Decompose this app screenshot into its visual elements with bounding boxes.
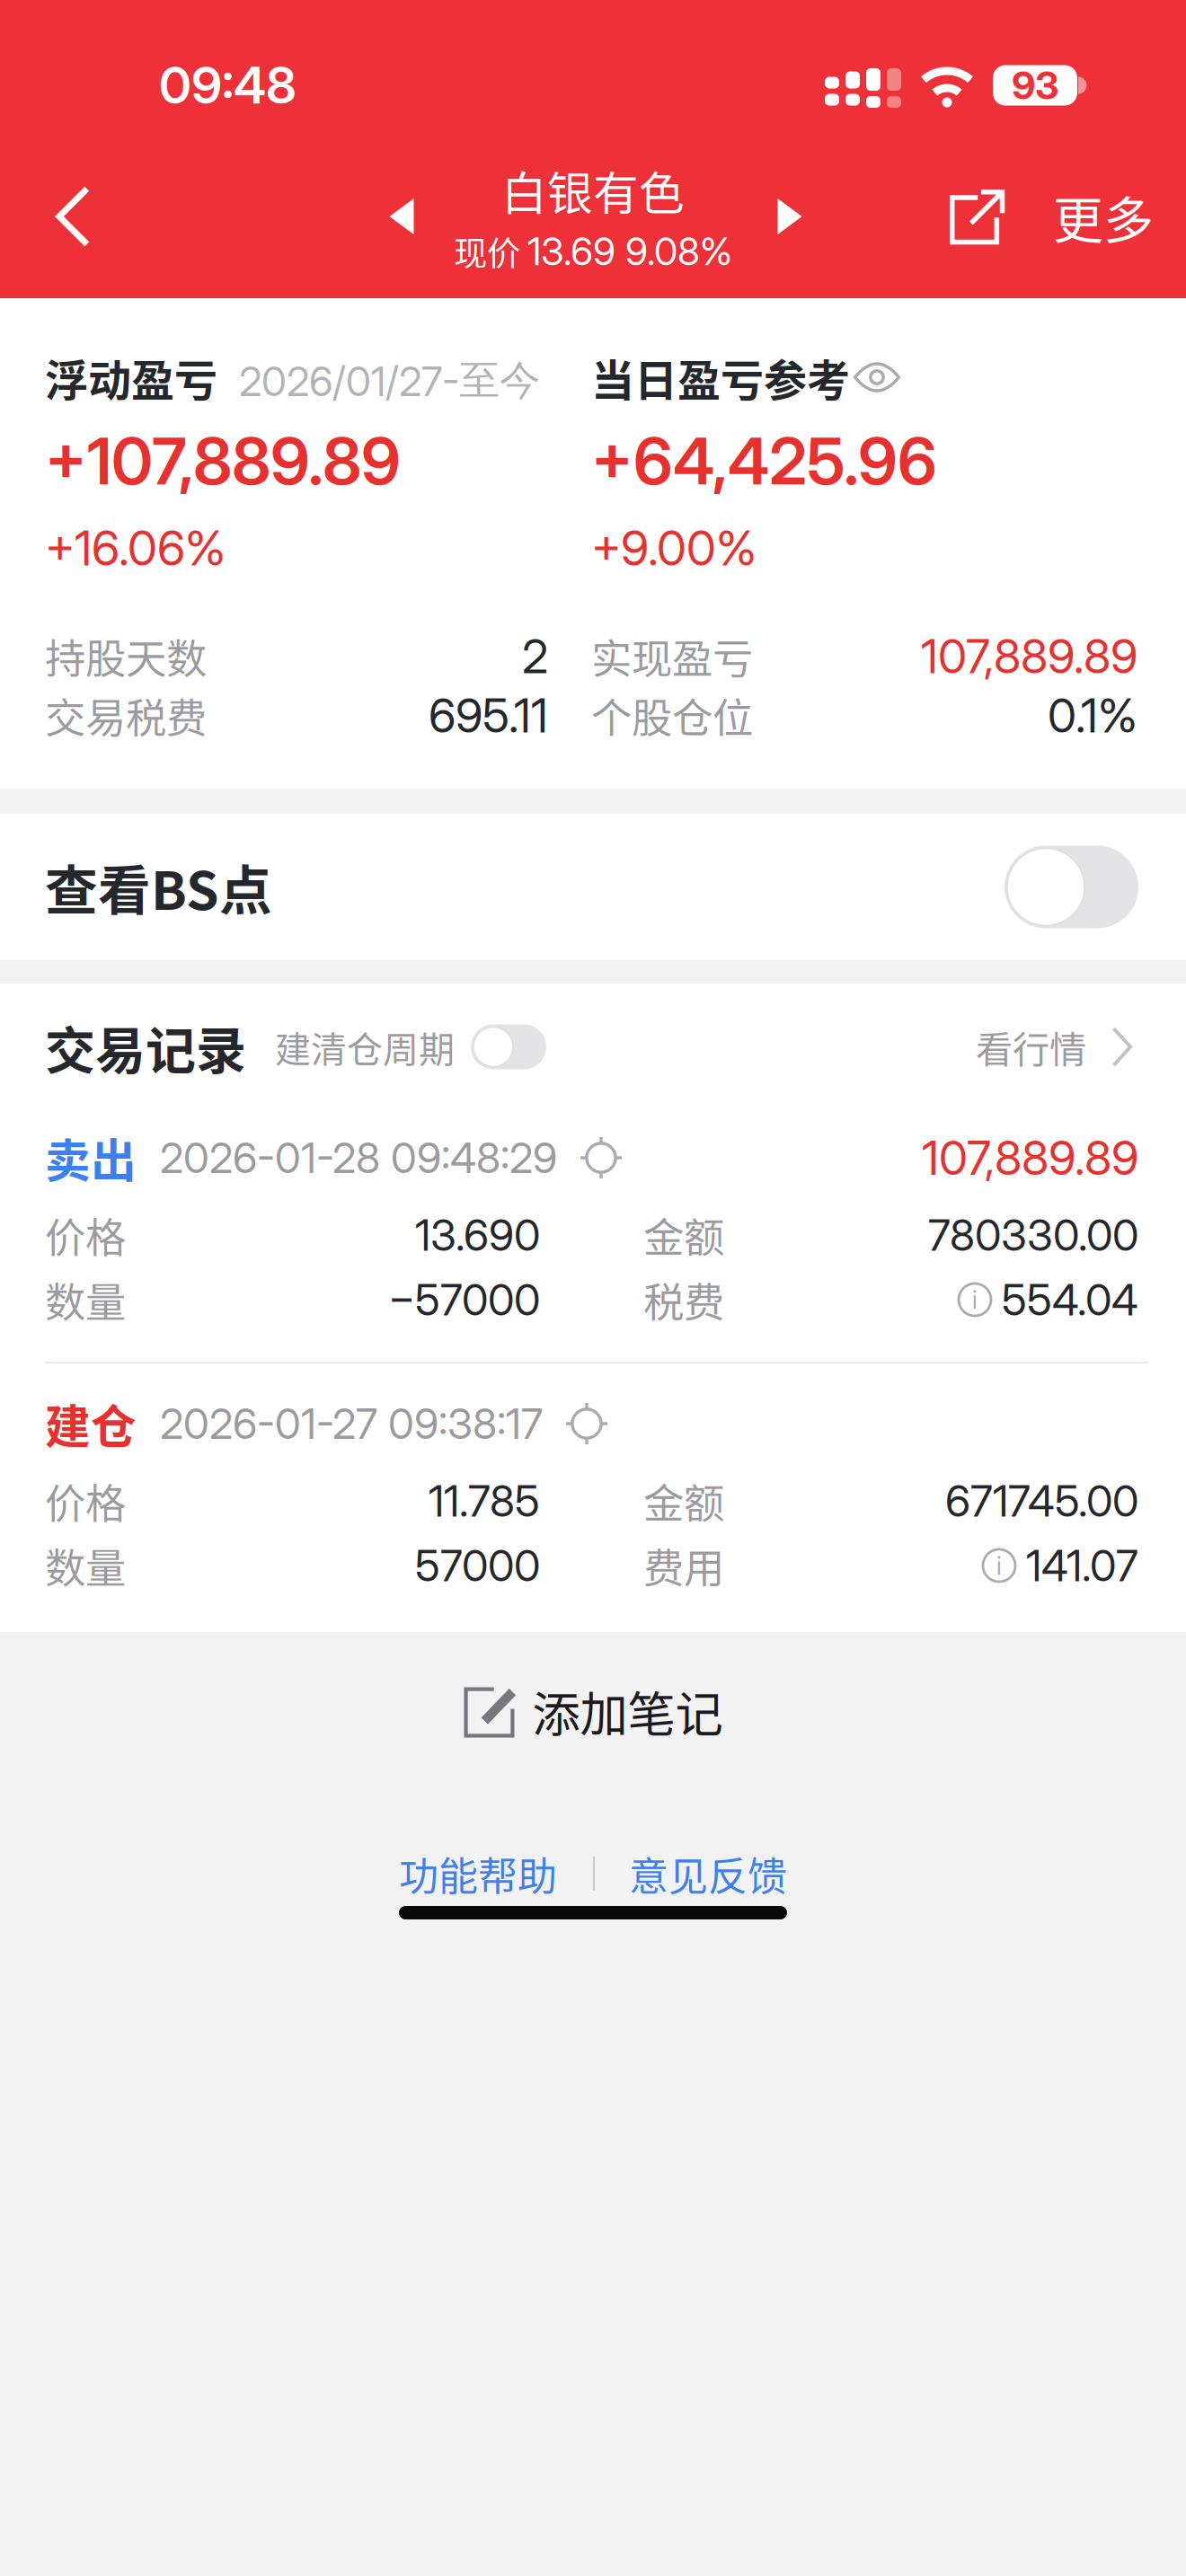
staticText: 554.04	[1002, 1274, 1138, 1326]
staticText: 695.11	[429, 687, 548, 744]
button[interactable]: 返回	[38, 149, 108, 284]
staticText: 107,889.89	[921, 628, 1137, 684]
staticText: 2	[522, 628, 548, 684]
staticText: −57000	[388, 1274, 540, 1326]
staticText: 金额	[643, 1471, 724, 1530]
staticText: 93	[1012, 62, 1058, 109]
button[interactable]: 分享	[943, 149, 1010, 284]
staticText: 671745.00	[945, 1475, 1138, 1527]
staticText: 查看BS点	[45, 849, 272, 925]
staticText: 数量	[45, 1536, 126, 1595]
staticText: 2026/01/27-至今	[239, 355, 540, 406]
staticText: 更多	[1053, 180, 1154, 253]
staticText: 功能帮助	[399, 1845, 557, 1902]
staticText: +64,425.96	[591, 422, 937, 500]
staticText: 09:48	[159, 55, 296, 116]
staticText: 建清仓周期	[275, 1021, 455, 1073]
staticText: 780330.00	[928, 1209, 1138, 1261]
staticText: 2026-01-28 09:48:29	[160, 1132, 557, 1183]
button[interactable]: 下一只股票	[766, 149, 813, 284]
button[interactable]: 查看BS点	[0, 814, 1186, 960]
button[interactable]: 功能帮助	[399, 1848, 557, 1899]
button[interactable]: 添加笔记	[0, 1678, 1186, 1744]
staticText: 白银有色	[501, 157, 685, 223]
staticText: +107,889.89	[45, 422, 401, 500]
staticText: 价格	[45, 1471, 126, 1530]
staticText: 2026-01-27 09:38:17	[160, 1398, 543, 1449]
staticText: 建仓	[45, 1391, 137, 1457]
staticText: 107,889.89	[922, 1129, 1138, 1186]
staticText: 交易记录	[45, 1010, 246, 1083]
staticText: 数量	[45, 1270, 126, 1329]
staticText: 57000	[415, 1539, 540, 1592]
button[interactable]: 更多	[1053, 149, 1154, 284]
staticText: 个股仓位	[591, 686, 753, 745]
staticText: 交易税费	[45, 686, 207, 745]
staticText: 0.1%	[1048, 687, 1137, 744]
staticText: 卖出	[45, 1125, 137, 1191]
staticText: 当日盈亏参考	[591, 346, 850, 408]
staticText: 看行情	[976, 1020, 1086, 1074]
button[interactable]: 看行情	[976, 1020, 1132, 1074]
staticText: 持股天数	[45, 627, 207, 686]
staticText: 价格	[45, 1206, 126, 1264]
button[interactable]: 上一只股票	[378, 149, 425, 284]
staticText: 意见反馈	[629, 1845, 787, 1902]
staticText: 浮动盈亏	[45, 346, 217, 408]
staticText: +16.06%	[45, 519, 226, 577]
staticText: 金额	[643, 1206, 724, 1264]
staticText: 实现盈亏	[591, 627, 753, 686]
staticText: 费用	[643, 1536, 724, 1595]
staticText: 税费	[643, 1270, 724, 1329]
staticText: 现价	[454, 227, 527, 276]
staticText: 13.690	[415, 1209, 540, 1261]
staticText: +9.00%	[591, 519, 757, 577]
staticText: 11.785	[429, 1475, 540, 1527]
button[interactable]: 意见反馈	[629, 1848, 787, 1899]
staticText: 添加笔记	[532, 1676, 723, 1746]
staticText: 13.69 9.08%	[527, 228, 732, 274]
staticText: i	[972, 1285, 978, 1315]
staticText: 141.07	[1026, 1539, 1138, 1592]
staticText: i	[996, 1550, 1002, 1581]
